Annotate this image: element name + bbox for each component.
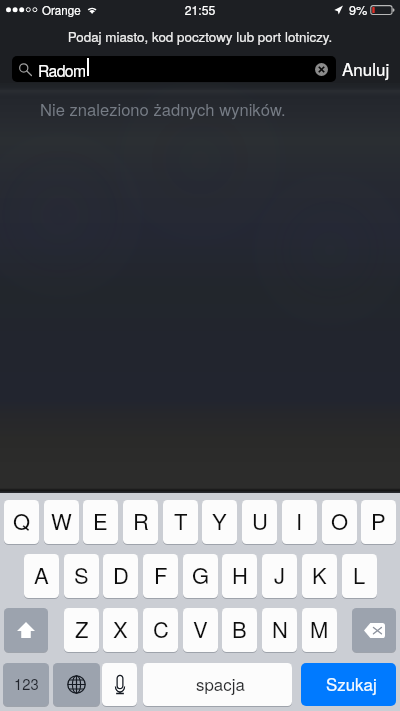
- button[interactable]: B: [222, 608, 257, 652]
- staticText: H: [232, 559, 248, 591]
- button[interactable]: Z: [64, 608, 99, 652]
- button[interactable]: E: [83, 500, 118, 544]
- button[interactable]: N: [262, 608, 297, 652]
- button[interactable]: 123: [3, 663, 49, 706]
- staticText: Z: [75, 613, 89, 645]
- button[interactable]: Szukaj: [301, 663, 396, 706]
- staticText: R: [133, 505, 149, 537]
- button[interactable]: K: [302, 554, 337, 598]
- staticText: Q: [13, 505, 31, 537]
- staticText: C: [153, 613, 169, 645]
- button[interactable]: D: [103, 554, 138, 598]
- staticText: E: [93, 505, 108, 537]
- button[interactable]: X: [103, 608, 138, 652]
- staticText: O: [331, 505, 349, 537]
- staticText: G: [192, 559, 210, 591]
- button[interactable]: Backspace: [352, 608, 396, 652]
- staticText: K: [312, 559, 327, 591]
- button[interactable]: Anuluj: [342, 55, 390, 81]
- staticText: A: [34, 559, 49, 591]
- button[interactable]: I: [282, 500, 317, 544]
- button[interactable]: Q: [4, 500, 39, 544]
- button[interactable]: Switch keyboard: [53, 663, 100, 706]
- button[interactable]: O: [322, 500, 357, 544]
- button[interactable]: A: [24, 554, 59, 598]
- staticText: Radom: [38, 59, 86, 82]
- button[interactable]: F: [143, 554, 178, 598]
- button[interactable]: L: [342, 554, 377, 598]
- button[interactable]: U: [242, 500, 277, 544]
- staticText: L: [353, 559, 366, 591]
- staticText: Szukaj: [326, 672, 377, 696]
- staticText: Y: [212, 505, 227, 537]
- button[interactable]: W: [44, 500, 79, 544]
- button[interactable]: H: [222, 554, 257, 598]
- button[interactable]: Shift: [4, 608, 48, 652]
- staticText: Orange: [42, 2, 81, 19]
- button[interactable]: R: [123, 500, 158, 544]
- staticText: X: [113, 613, 128, 645]
- staticText: V: [193, 613, 208, 645]
- staticText: T: [174, 505, 188, 537]
- staticText: J: [274, 559, 286, 591]
- staticText: W: [51, 505, 72, 537]
- staticText: 21:55: [0, 1, 400, 18]
- staticText: N: [272, 613, 288, 645]
- button[interactable]: Dictate: [102, 663, 137, 706]
- staticText: D: [113, 559, 129, 591]
- button[interactable]: G: [183, 554, 218, 598]
- staticText: spacja: [196, 672, 245, 696]
- button[interactable]: M: [302, 608, 337, 652]
- staticText: S: [74, 559, 89, 591]
- staticText: B: [232, 613, 247, 645]
- button[interactable]: P: [361, 500, 396, 544]
- staticText: F: [154, 559, 168, 591]
- button[interactable]: S: [64, 554, 99, 598]
- button[interactable]: V: [183, 608, 218, 652]
- staticText: 123: [14, 673, 39, 694]
- button[interactable]: J: [262, 554, 297, 598]
- button[interactable]: Radom: [12, 56, 336, 82]
- staticText: Podaj miasto, kod pocztowy lub port lotn…: [0, 27, 400, 46]
- button[interactable]: spacja: [143, 663, 292, 706]
- button[interactable]: Y: [202, 500, 237, 544]
- staticText: U: [252, 505, 268, 537]
- staticText: Anuluj: [342, 56, 390, 80]
- staticText: I: [296, 505, 303, 537]
- staticText: Nie znaleziono żadnych wyników.: [40, 97, 286, 121]
- button[interactable]: Clear text: [315, 63, 328, 76]
- button[interactable]: T: [163, 500, 198, 544]
- button[interactable]: C: [143, 608, 178, 652]
- staticText: 9%: [349, 0, 368, 18]
- staticText: P: [371, 505, 386, 537]
- staticText: M: [310, 613, 329, 645]
